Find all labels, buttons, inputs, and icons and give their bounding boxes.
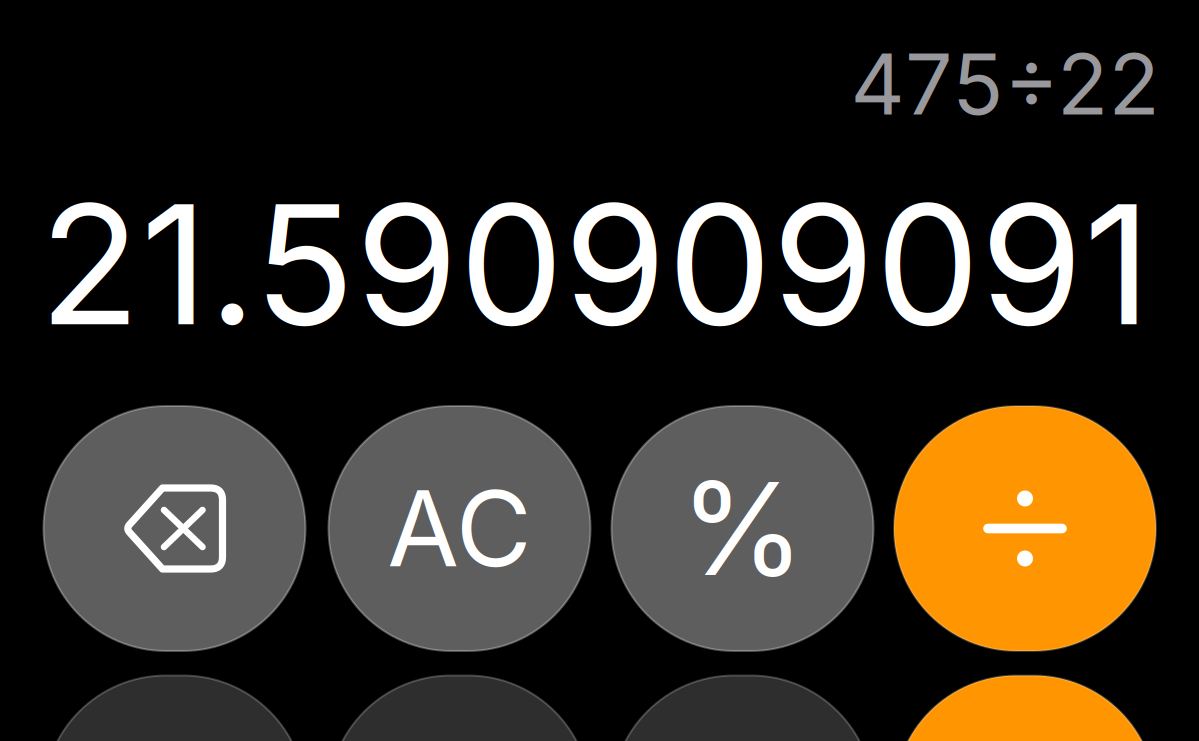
button[interactable]: % (611, 406, 873, 651)
button[interactable]: AC (328, 406, 590, 651)
staticText: % (679, 451, 805, 606)
staticText: 475÷22 (850, 33, 1159, 135)
button[interactable]: Divide (894, 406, 1156, 651)
button[interactable]: Delete (43, 406, 305, 651)
staticText: 21.590909091 (39, 164, 1151, 364)
staticText: AC (387, 466, 532, 591)
